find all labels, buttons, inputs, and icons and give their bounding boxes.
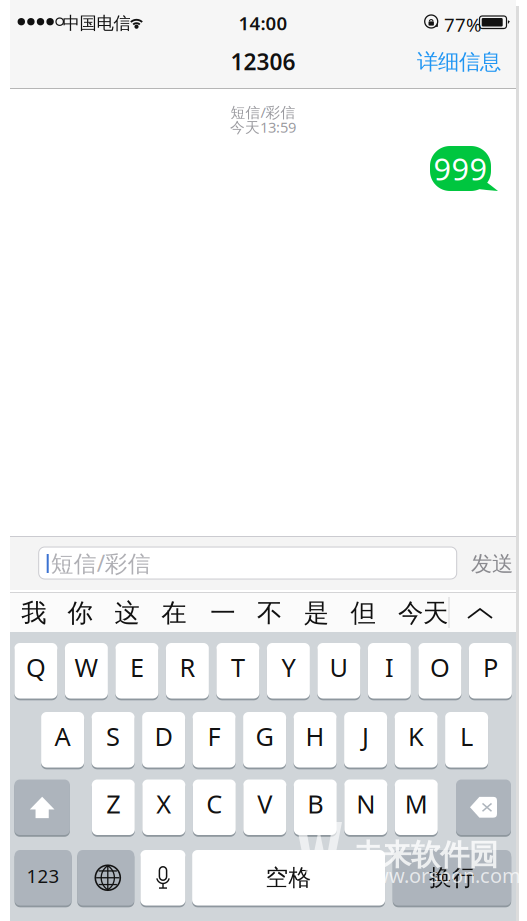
staticText: M xyxy=(405,787,428,820)
staticText: K xyxy=(408,719,424,753)
button[interactable]: P xyxy=(469,643,512,700)
staticText: 换行 xyxy=(429,864,475,892)
staticText: www.orsoon.com xyxy=(357,862,521,889)
button[interactable]: Next keyboard xyxy=(77,850,134,907)
button[interactable]: M xyxy=(395,779,438,837)
staticText: L xyxy=(460,719,473,753)
staticText: I xyxy=(385,650,394,684)
button[interactable]: More candidates xyxy=(450,593,508,634)
staticText: 这 xyxy=(114,597,139,628)
staticText: Y xyxy=(281,650,295,684)
staticText: 一 xyxy=(210,597,235,628)
button[interactable]: 但 xyxy=(342,593,384,633)
button[interactable]: K xyxy=(395,712,438,769)
button[interactable]: Z xyxy=(92,779,135,837)
button[interactable]: Space xyxy=(192,850,385,907)
button[interactable]: O xyxy=(418,643,461,700)
staticText: X xyxy=(156,787,171,820)
staticText: A xyxy=(55,719,71,753)
button[interactable]: X xyxy=(142,779,185,837)
button[interactable]: 我 xyxy=(13,593,55,633)
staticText: P xyxy=(483,650,498,684)
button[interactable]: Dictate xyxy=(140,850,185,907)
staticText: T xyxy=(231,650,245,684)
button[interactable]: 在 xyxy=(153,593,195,633)
button[interactable]: 不 xyxy=(248,593,290,633)
staticText: 今天 xyxy=(398,597,448,628)
button[interactable]: V xyxy=(243,779,286,837)
staticText: Z xyxy=(106,787,120,820)
staticText: F xyxy=(208,719,221,753)
staticText: 77% xyxy=(444,12,482,37)
button[interactable]: C xyxy=(193,779,236,837)
button[interactable]: J xyxy=(344,712,387,769)
button[interactable]: A xyxy=(41,712,84,769)
staticText: 14:00 xyxy=(238,11,287,35)
staticText: 999 xyxy=(433,148,487,189)
staticText: U xyxy=(329,650,348,684)
staticText: 是 xyxy=(304,597,329,628)
button[interactable]: F xyxy=(193,712,236,769)
staticText: 123 xyxy=(27,863,60,888)
staticText: 短信/彩信 xyxy=(51,548,151,578)
button[interactable]: D xyxy=(142,712,185,769)
staticText: 在 xyxy=(161,597,186,628)
staticText: O xyxy=(430,650,450,684)
staticText: R xyxy=(179,650,195,684)
button[interactable]: Delete xyxy=(456,779,511,837)
button[interactable]: 详细信息 xyxy=(409,46,509,78)
staticText: 今天13:59 xyxy=(230,117,296,137)
button[interactable]: B xyxy=(294,779,337,837)
button[interactable]: T xyxy=(216,643,259,700)
staticText: D xyxy=(155,719,173,753)
button[interactable]: 这 xyxy=(106,593,148,633)
button[interactable]: 发送 xyxy=(468,547,516,581)
staticText: B xyxy=(307,787,323,820)
button[interactable]: 你 xyxy=(59,593,101,633)
staticText: H xyxy=(306,719,325,753)
staticText: 不 xyxy=(257,597,282,628)
staticText: G xyxy=(256,719,274,753)
button[interactable]: 一 xyxy=(202,593,244,633)
button[interactable]: I xyxy=(368,643,411,700)
button[interactable]: S xyxy=(92,712,135,769)
staticText: 但 xyxy=(350,597,375,628)
staticText: 发送 xyxy=(471,551,513,577)
staticText: 12306 xyxy=(230,46,295,76)
staticText: 中国电信 xyxy=(62,12,130,34)
button[interactable]: L xyxy=(445,712,488,769)
button[interactable]: N xyxy=(344,779,387,837)
staticText: C xyxy=(206,787,222,820)
staticText: N xyxy=(356,787,375,820)
button[interactable]: U xyxy=(317,643,360,700)
button[interactable]: Y xyxy=(267,643,310,700)
button[interactable]: Shift xyxy=(14,779,70,837)
button[interactable]: Return xyxy=(393,850,511,907)
staticText: E xyxy=(130,650,144,684)
button[interactable]: 今天 xyxy=(400,593,446,633)
staticText: 你 xyxy=(67,597,92,628)
button[interactable]: 是 xyxy=(295,593,337,633)
button[interactable]: W xyxy=(65,643,108,700)
staticText: 空格 xyxy=(266,864,312,892)
staticText: Q xyxy=(26,650,46,684)
button[interactable]: G xyxy=(243,712,286,769)
staticText: V xyxy=(257,787,272,820)
staticText: 详细信息 xyxy=(417,49,501,75)
staticText: S xyxy=(106,719,120,753)
button[interactable]: E xyxy=(115,643,158,700)
button[interactable]: H xyxy=(294,712,337,769)
button[interactable]: 123 xyxy=(15,850,72,907)
staticText: J xyxy=(362,719,369,753)
button[interactable]: R xyxy=(166,643,209,700)
staticText: 未来软件园 xyxy=(353,837,498,873)
staticText: 我 xyxy=(21,597,46,628)
staticText: W xyxy=(74,650,98,684)
button[interactable]: Q xyxy=(14,643,57,700)
staticText: 短信/彩信 xyxy=(230,102,295,122)
